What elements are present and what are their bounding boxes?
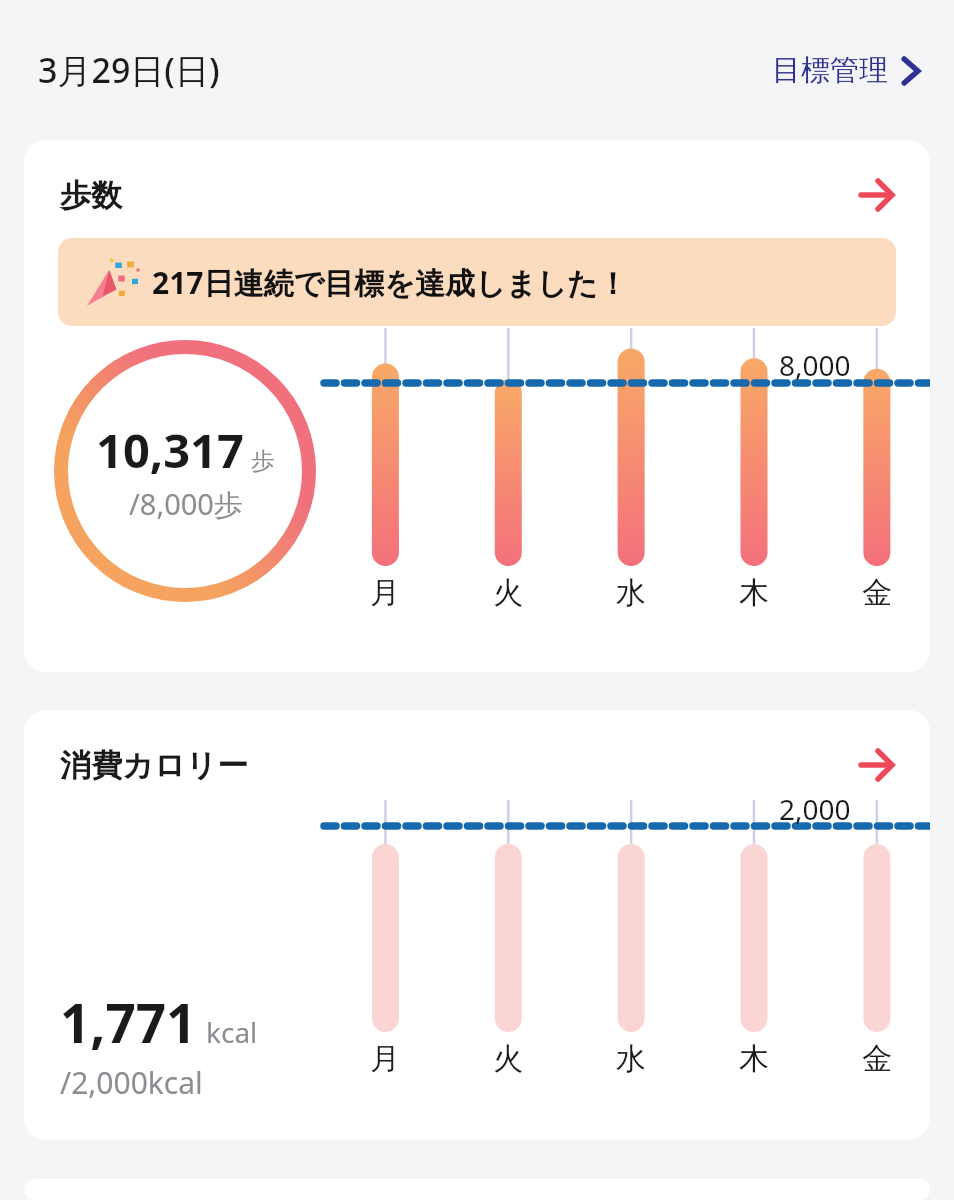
staticText: 歩 bbox=[251, 446, 275, 476]
staticText: 10,317 bbox=[96, 418, 244, 482]
staticText: 3月29日(日) bbox=[38, 47, 220, 93]
button[interactable]: 歩数 bbox=[24, 140, 930, 672]
staticText: 水 bbox=[616, 1040, 646, 1078]
staticText: 水 bbox=[616, 574, 646, 612]
staticText: /8,000歩 bbox=[129, 484, 243, 524]
staticText: 火 bbox=[493, 574, 523, 612]
staticText: 1,771 bbox=[60, 986, 197, 1058]
staticText: 消費カロリー bbox=[60, 746, 249, 785]
staticText: 月 bbox=[370, 1040, 400, 1078]
button[interactable]: 消費カロリーの詳細を見る bbox=[850, 738, 904, 792]
staticText: /2,000kcal bbox=[60, 1062, 203, 1103]
staticText: 歩数 bbox=[60, 176, 122, 215]
staticText: 金 bbox=[862, 1040, 892, 1078]
button[interactable]: 消費カロリー bbox=[24, 710, 930, 1140]
staticText: 8,000 bbox=[779, 346, 851, 384]
staticText: 火 bbox=[493, 1040, 523, 1078]
button[interactable]: 217日連続で目標を達成しました！ bbox=[58, 238, 896, 326]
staticText: 木 bbox=[739, 1040, 769, 1078]
staticText: 目標管理 bbox=[772, 52, 888, 89]
button[interactable]: 歩数の詳細を見る bbox=[850, 168, 904, 222]
staticText: kcal bbox=[206, 1013, 258, 1051]
button[interactable]: 目標管理 bbox=[772, 52, 920, 89]
staticText: 2,000 bbox=[779, 790, 851, 828]
staticText: 217日連続で目標を達成しました！ bbox=[152, 262, 628, 303]
staticText: 月 bbox=[370, 574, 400, 612]
staticText: 木 bbox=[739, 574, 769, 612]
staticText: 金 bbox=[862, 574, 892, 612]
